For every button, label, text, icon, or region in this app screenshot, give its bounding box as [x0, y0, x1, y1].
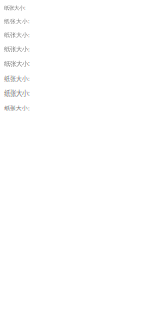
staticText: 纸张大小:: [4, 59, 30, 68]
staticText: 纸张大小:: [4, 17, 30, 25]
staticText: 纸张大小:: [4, 4, 25, 11]
staticText: 纸张大小:: [4, 74, 30, 82]
staticText: 纸张大小:: [4, 88, 30, 98]
staticText: 纸张大小:: [4, 31, 30, 39]
staticText: 纸张大小:: [4, 45, 30, 53]
staticText: 纸张大小:: [4, 104, 30, 112]
